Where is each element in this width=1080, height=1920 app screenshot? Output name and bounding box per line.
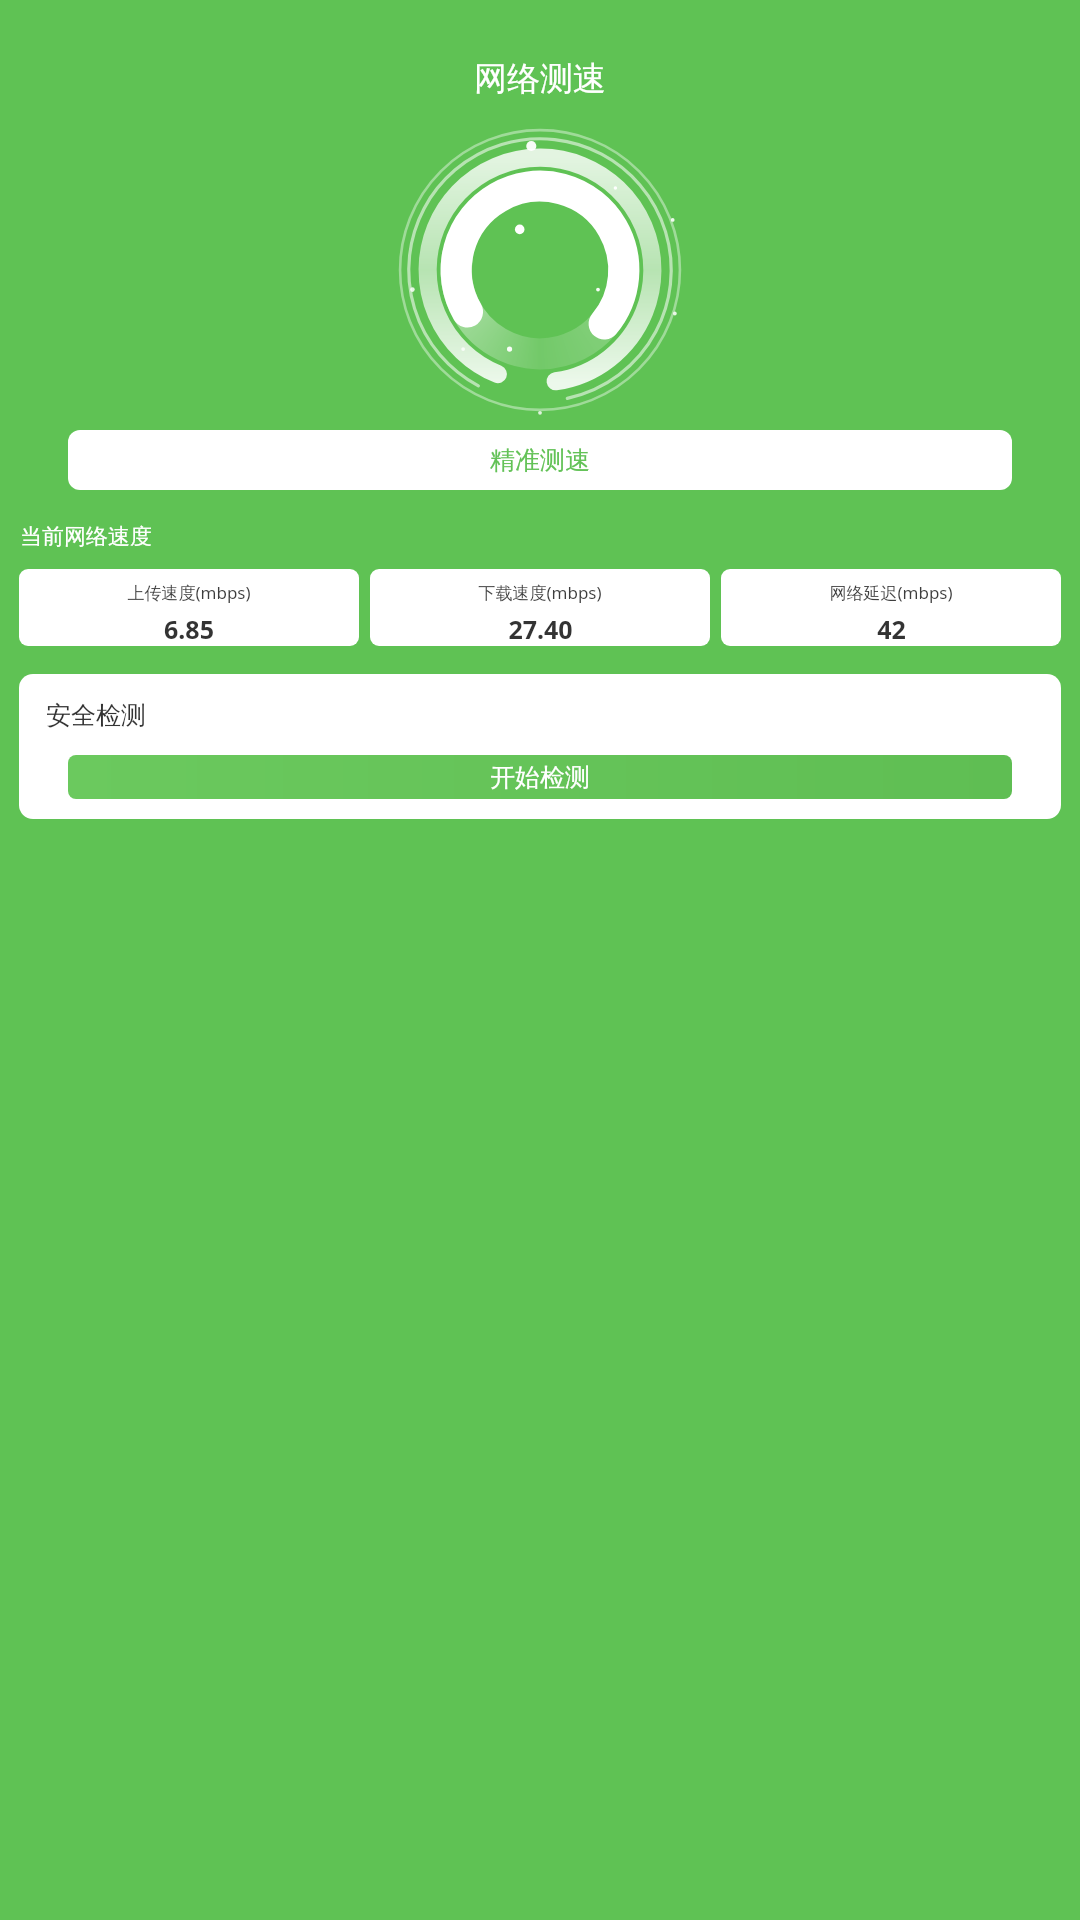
staticText: 开始检测 [490, 762, 590, 793]
staticText: 安全检测 [46, 700, 146, 731]
staticText: 42 [877, 612, 906, 646]
staticText: 下载速度(mbps) [478, 581, 602, 604]
staticText: 网络延迟(mbps) [829, 581, 953, 604]
staticText: 当前网络速度 [20, 523, 152, 551]
button[interactable]: 上传速度(mbps) [19, 569, 359, 646]
staticText: 网络测速 [474, 58, 606, 100]
button[interactable]: 开始检测 [68, 755, 1012, 799]
staticText: 27.40 [508, 612, 573, 646]
button[interactable]: 下载速度(mbps) [370, 569, 710, 646]
staticText: 6.85 [164, 612, 214, 646]
staticText: 上传速度(mbps) [127, 581, 251, 604]
button[interactable]: 网络延迟(mbps) [721, 569, 1061, 646]
staticText: 精准测速 [490, 445, 590, 476]
button[interactable]: 精准测速 [68, 430, 1012, 490]
